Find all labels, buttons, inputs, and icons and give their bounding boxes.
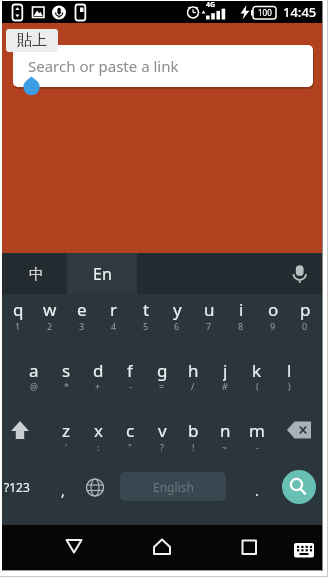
button[interactable]: 2 (34, 315, 66, 337)
staticText: g (157, 359, 168, 381)
button[interactable]: ( (241, 375, 273, 397)
staticText: s (62, 359, 71, 381)
button[interactable]: h (177, 359, 209, 381)
button[interactable]: , (47, 479, 79, 501)
staticText: a (29, 359, 39, 381)
button[interactable]: f (114, 359, 146, 381)
staticText: ) (288, 380, 291, 392)
button[interactable]: English (120, 472, 226, 501)
button[interactable]: @ (18, 375, 50, 397)
button[interactable]: j (209, 359, 241, 381)
button[interactable]: 4 (98, 315, 130, 337)
staticText: 14:45 (283, 3, 317, 21)
staticText: / (191, 380, 195, 392)
staticText: n (220, 419, 231, 441)
button[interactable]: 5 (130, 315, 162, 337)
button[interactable] (231, 532, 267, 562)
staticText: ' (65, 441, 68, 453)
staticText: e (77, 298, 87, 320)
button[interactable]: 3 (66, 315, 98, 337)
button[interactable]: = (146, 375, 178, 397)
button[interactable]: - (241, 436, 273, 458)
button[interactable]: n (209, 419, 241, 441)
button[interactable]: s (50, 359, 82, 381)
button[interactable]: o (257, 298, 289, 320)
button[interactable]: d (82, 359, 114, 381)
button[interactable]: - (114, 375, 146, 397)
button[interactable]: r (98, 298, 130, 320)
button[interactable]: + (82, 375, 114, 397)
button[interactable]: 8 (225, 315, 257, 337)
staticText: . (255, 481, 259, 500)
button[interactable]: g (146, 359, 178, 381)
button[interactable]: ?123 (0, 476, 36, 498)
staticText: u (204, 298, 215, 320)
button[interactable]: : (82, 436, 114, 458)
button[interactable]: ? (146, 436, 178, 458)
button[interactable]: w (34, 298, 66, 320)
button[interactable]: 6 (161, 315, 193, 337)
staticText: j (223, 359, 228, 381)
button[interactable]: c (114, 419, 146, 441)
button[interactable]: 9 (257, 315, 289, 337)
button[interactable]: / (177, 375, 209, 397)
button[interactable]: " (114, 436, 146, 458)
button[interactable]: q (2, 298, 34, 320)
button[interactable]: k (241, 359, 273, 381)
button[interactable]: l (273, 359, 305, 381)
button[interactable]: e (66, 298, 98, 320)
staticText: : (97, 441, 100, 453)
staticText: @ (30, 380, 39, 392)
button[interactable]: u (193, 298, 225, 320)
button[interactable]: v (146, 419, 178, 441)
button[interactable]: ) (273, 375, 305, 397)
button[interactable]: t (130, 298, 162, 320)
button[interactable]: Search or paste a link (13, 45, 313, 87)
button[interactable]: ' (50, 436, 82, 458)
staticText: x (94, 419, 103, 441)
button[interactable] (56, 532, 92, 562)
staticText: ( (256, 380, 259, 392)
button[interactable] (288, 535, 318, 563)
button[interactable]: 1 (2, 315, 34, 337)
button[interactable]: # (209, 375, 241, 397)
staticText: v (158, 419, 167, 441)
button[interactable]: ! (177, 436, 209, 458)
staticText: 4G (206, 0, 216, 10)
button[interactable]: 中 (20, 263, 52, 285)
button[interactable]: b (177, 419, 209, 441)
button[interactable]: En (67, 253, 137, 294)
staticText: 0 (302, 320, 308, 332)
staticText: English (153, 479, 194, 495)
staticText: - (256, 441, 259, 453)
button[interactable]: 貼上 (6, 29, 58, 52)
button[interactable]: m (241, 419, 273, 441)
staticText: l (287, 359, 292, 381)
button[interactable]: y (161, 298, 193, 320)
staticText: y (173, 298, 182, 320)
staticText: h (188, 359, 199, 381)
button[interactable]: z (50, 419, 82, 441)
staticText: " (128, 441, 132, 453)
button[interactable]: * (50, 375, 82, 397)
button[interactable]: ~ (209, 436, 241, 458)
button[interactable] (144, 532, 180, 562)
staticText: 1 (15, 320, 21, 332)
staticText: 貼上 (17, 31, 47, 50)
staticText: c (126, 419, 135, 441)
button[interactable]: i (225, 298, 257, 320)
staticText: - (129, 380, 132, 392)
button[interactable]: x (82, 419, 114, 441)
staticText: ! (192, 441, 195, 453)
staticText: 中 (29, 265, 44, 284)
button[interactable]: a (18, 359, 50, 381)
staticText: o (268, 298, 279, 320)
button[interactable]: . (241, 479, 273, 501)
button[interactable]: 0 (289, 315, 321, 337)
staticText: w (43, 298, 57, 320)
button[interactable]: p (289, 298, 321, 320)
staticText: r (110, 298, 118, 320)
button[interactable]: 7 (193, 315, 225, 337)
button[interactable] (282, 470, 316, 504)
staticText: 9 (270, 320, 276, 332)
